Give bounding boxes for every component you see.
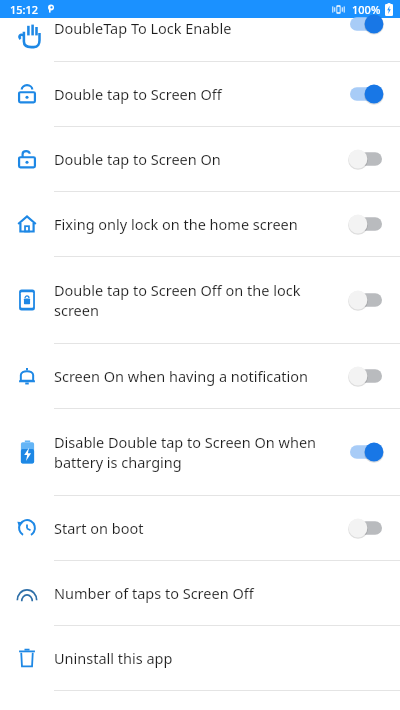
button[interactable]: Off xyxy=(346,515,386,541)
staticText: Disable Double tap to Screen On when bat… xyxy=(54,432,332,472)
staticText: 15:12 xyxy=(10,2,39,17)
button[interactable]: DoubleTap To Lock Enable xyxy=(0,18,400,61)
staticText: 100% xyxy=(352,2,381,17)
staticText: Start on boot xyxy=(54,518,332,538)
button[interactable]: On xyxy=(346,18,386,38)
button[interactable]: Uninstall this app xyxy=(0,626,400,690)
staticText: Double tap to Screen Off on the lock scr… xyxy=(54,280,332,320)
button[interactable]: Fixing only lock on the home screen xyxy=(0,192,400,256)
button[interactable]: Off xyxy=(346,363,386,389)
button[interactable]: Off xyxy=(346,146,386,172)
button[interactable]: On xyxy=(346,439,386,465)
button[interactable]: Number of taps to Screen Off xyxy=(0,561,400,625)
staticText: Double tap to Screen Off xyxy=(54,84,332,104)
staticText: Screen On when having a notification xyxy=(54,366,332,386)
button[interactable]: Screen On when having a notification xyxy=(0,344,400,408)
staticText: Number of taps to Screen Off xyxy=(54,583,386,603)
button[interactable]: Disable Double tap to Screen On when bat… xyxy=(0,409,400,495)
staticText: Double tap to Screen On xyxy=(54,149,332,169)
staticText: Uninstall this app xyxy=(54,648,386,668)
staticText: Fixing only lock on the home screen xyxy=(54,214,332,234)
button[interactable]: Off xyxy=(346,211,386,237)
staticText: DoubleTap To Lock Enable xyxy=(54,18,232,38)
button[interactable]: On xyxy=(346,81,386,107)
button[interactable]: Start on boot xyxy=(0,496,400,560)
button[interactable]: Double tap to Screen Off on the lock scr… xyxy=(0,257,400,343)
button[interactable]: Off xyxy=(346,287,386,313)
button[interactable]: Double tap to Screen Off xyxy=(0,62,400,126)
button[interactable]: Double tap to Screen On xyxy=(0,127,400,191)
